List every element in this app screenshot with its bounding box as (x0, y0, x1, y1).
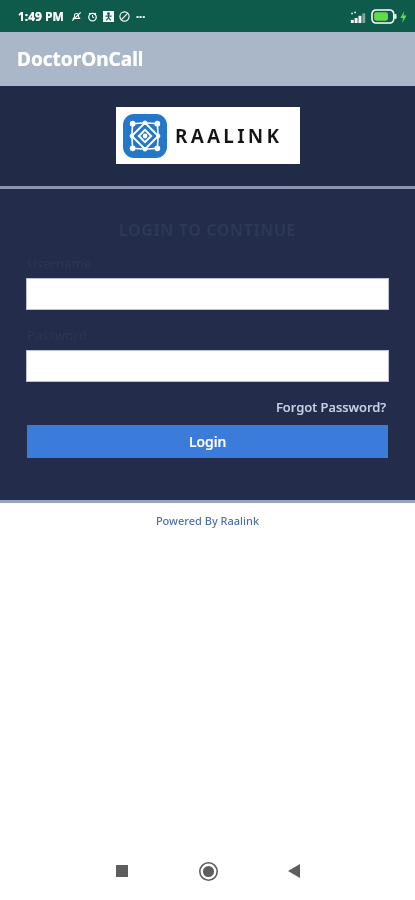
button[interactable] (26, 278, 389, 310)
staticText: RAALINK (175, 123, 283, 149)
staticText: LOGIN TO CONTINUE (0, 219, 415, 241)
staticText: Forgot Password? (276, 398, 387, 416)
button[interactable]: Home (185, 848, 231, 894)
staticText: ··· (136, 9, 146, 24)
staticText: Login (189, 432, 227, 451)
staticText: DoctorOnCall (17, 46, 144, 72)
button[interactable] (26, 350, 389, 382)
button[interactable]: Forgot Password? (274, 396, 389, 418)
button[interactable]: Login (27, 425, 388, 458)
staticText: 1:49 PM (18, 8, 64, 24)
staticText: Password (27, 326, 87, 344)
staticText: Powered By Raalink (0, 513, 415, 528)
button[interactable]: Back (271, 848, 317, 894)
button[interactable]: Recent apps (99, 848, 145, 894)
staticText: Username (27, 254, 92, 272)
